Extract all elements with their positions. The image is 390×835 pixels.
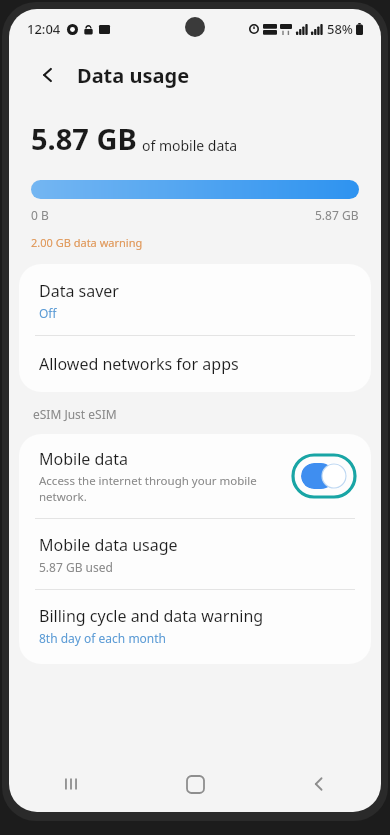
staticText: Allowed networks for apps bbox=[39, 353, 239, 375]
staticText: 5.87 GB bbox=[315, 207, 359, 223]
staticText: 58% bbox=[327, 20, 353, 38]
staticText: 0 B bbox=[31, 207, 49, 223]
staticText: 8th day of each month bbox=[39, 630, 167, 646]
button[interactable]: Allowed networks for apps bbox=[19, 336, 371, 392]
button[interactable]: Data saver bbox=[19, 264, 371, 335]
button[interactable]: Mobile data bbox=[19, 434, 371, 518]
staticText: Mobile data usage bbox=[39, 534, 178, 556]
staticText: Mobile data bbox=[39, 448, 129, 470]
staticText: 2.00 GB data warning bbox=[31, 235, 143, 250]
staticText: 5.87 GB bbox=[31, 119, 137, 158]
button[interactable]: Billing cycle and data warning bbox=[19, 590, 371, 664]
staticText: Data saver bbox=[39, 280, 119, 302]
staticText: eSIM Just eSIM bbox=[33, 406, 117, 422]
button[interactable]: Home bbox=[133, 756, 257, 812]
staticText: 5.87 GB used bbox=[39, 559, 113, 575]
button[interactable]: Recent apps bbox=[9, 756, 133, 812]
staticText: of mobile data bbox=[142, 136, 238, 155]
button[interactable]: Back bbox=[257, 756, 381, 812]
staticText: 12:04 bbox=[27, 20, 61, 38]
button[interactable]: Back bbox=[31, 58, 65, 92]
staticText: Access the internet through your mobile … bbox=[39, 473, 267, 504]
button[interactable]: Mobile data usage bbox=[19, 519, 371, 589]
staticText: Billing cycle and data warning bbox=[39, 605, 264, 627]
button[interactable]: Mobile data toggle bbox=[291, 453, 357, 499]
staticText: Off bbox=[39, 305, 57, 321]
staticText: Data usage bbox=[77, 62, 190, 89]
